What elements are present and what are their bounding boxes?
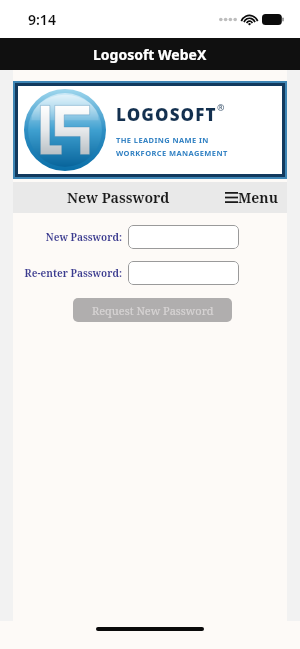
- button[interactable]: Menu: [223, 184, 281, 211]
- button[interactable]: [128, 261, 239, 285]
- staticText: Logosoft WebeX: [93, 45, 207, 64]
- staticText: THE LEADING NAME IN: [116, 135, 209, 145]
- staticText: LOGOSOFT: [116, 103, 217, 126]
- staticText: New Password: [67, 188, 170, 207]
- staticText: New Password:: [45, 230, 122, 244]
- staticText: ®: [217, 101, 225, 113]
- staticText: Re-enter Password:: [24, 266, 122, 280]
- button[interactable]: Request New Password: [73, 298, 232, 322]
- staticText: WORKFORCE MANAGEMENT: [116, 148, 228, 158]
- staticText: Menu: [238, 188, 279, 207]
- other: Menu: [225, 192, 238, 203]
- staticText: Request New Password: [92, 303, 214, 318]
- button[interactable]: [128, 225, 239, 249]
- staticText: 9:14: [28, 10, 56, 29]
